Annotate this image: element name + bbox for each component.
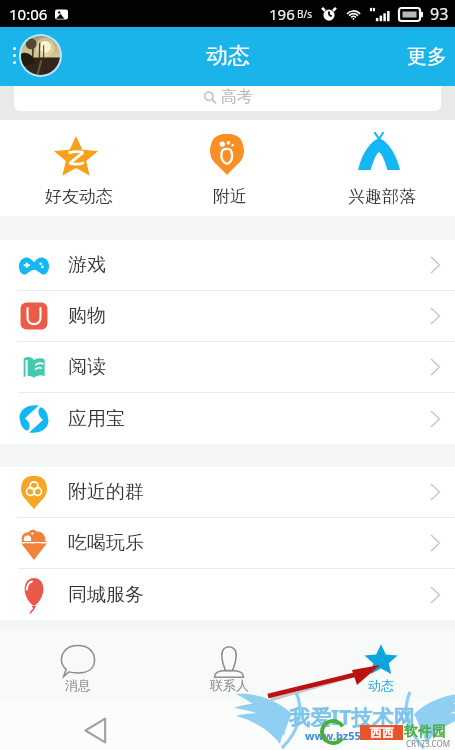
button[interactable]: 好友动态 (0, 120, 151, 216)
staticText: 动态 (368, 677, 394, 693)
button[interactable]: 阅读 (0, 342, 455, 392)
staticText: 更多 (407, 44, 447, 69)
staticText: 196 (269, 4, 295, 24)
button[interactable]: 游戏 (0, 240, 455, 290)
other: Back (84, 717, 107, 744)
staticText: 同城服务 (68, 583, 144, 607)
staticText: 兴趣部落 (348, 186, 416, 207)
button[interactable]: 应用宝 (0, 393, 455, 444)
button[interactable]: 附近 (151, 120, 303, 216)
button[interactable]: 购物 (0, 291, 455, 341)
button[interactable]: 更多 (393, 34, 455, 79)
staticText: 联系人 (210, 677, 249, 693)
staticText: 阅读 (68, 355, 106, 379)
staticText: 我爱IT技术网 (289, 703, 415, 732)
staticText: 消息 (65, 677, 91, 693)
staticText: 好友动态 (45, 186, 113, 207)
staticText: 高考 (221, 87, 253, 107)
button[interactable]: 吃喝玩乐 (0, 518, 455, 568)
staticText: 西西 (370, 725, 394, 740)
staticText: 附近 (213, 186, 247, 207)
staticText: www.bz55.com (305, 728, 388, 743)
staticText: 10:06 (9, 4, 48, 24)
button[interactable]: 消息 (0, 630, 151, 702)
button[interactable]: 动态 (303, 630, 455, 702)
staticText: 吃喝玩乐 (68, 531, 144, 555)
button[interactable]: 附近的群 (0, 467, 455, 517)
staticText: 软件园 (404, 723, 446, 741)
button[interactable]: 同城服务 (0, 569, 455, 620)
button[interactable]: 联系人 (151, 630, 303, 702)
staticText: 游戏 (68, 253, 106, 277)
staticText: B/s (297, 7, 313, 21)
staticText: CR173.COM (406, 738, 450, 749)
staticText: 附近的群 (68, 480, 144, 504)
button[interactable]: 兴趣部落 (303, 120, 455, 216)
button[interactable]: 高考 (14, 86, 441, 111)
staticText: 购物 (68, 304, 106, 328)
button[interactable]: Profile avatar (21, 36, 60, 75)
staticText: 动态 (206, 42, 250, 70)
staticText: 应用宝 (68, 407, 125, 431)
staticText: 93 (430, 3, 449, 25)
